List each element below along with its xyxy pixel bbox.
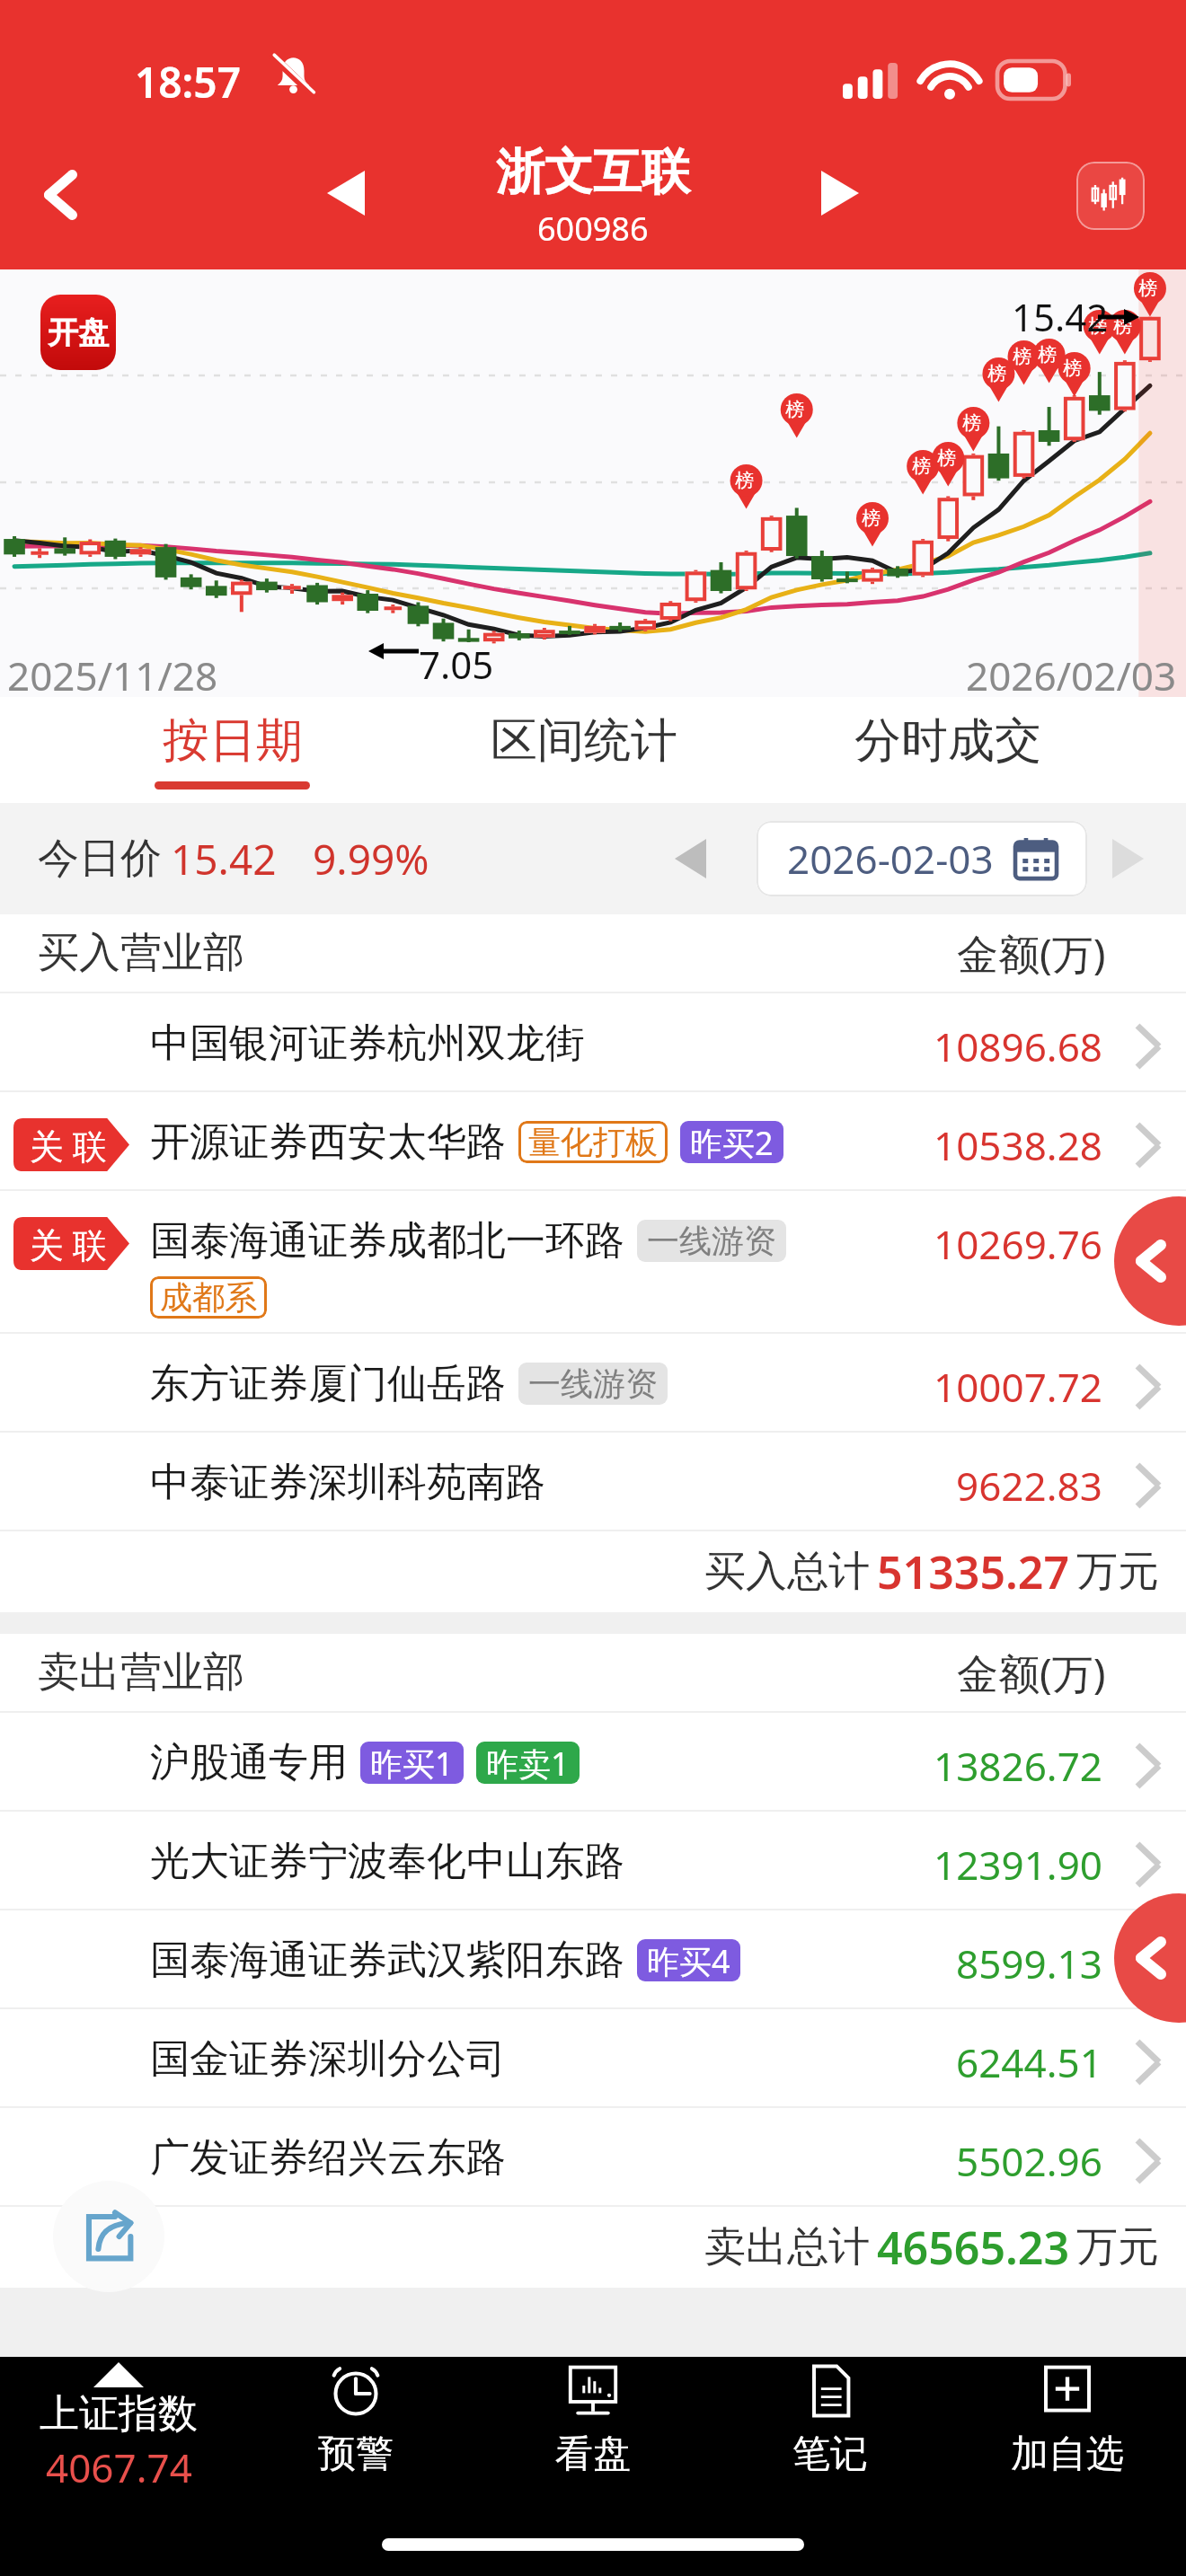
staticText: 加自选 xyxy=(1011,2430,1124,2478)
staticText: 榜 xyxy=(735,469,754,492)
staticText: 昨买1 xyxy=(370,1742,454,1784)
button[interactable]: 光大证券宁波奉化中山东路 xyxy=(0,1812,1186,1909)
staticText: 今日价 xyxy=(38,833,162,885)
button[interactable]: 中国银河证券杭州双龙街 xyxy=(0,993,1186,1090)
staticText: 9622.83 xyxy=(956,1459,1102,1513)
button[interactable]: 预警 xyxy=(237,2357,474,2501)
button[interactable]: 分时成交 xyxy=(786,697,1110,803)
staticText: 量化打板 xyxy=(528,1122,658,1162)
staticText: 笔记 xyxy=(792,2430,868,2478)
staticText: 东方证券厦门仙岳路 xyxy=(150,1359,506,1408)
staticText: 昨买2 xyxy=(690,1121,774,1163)
button[interactable]: 开盘 xyxy=(40,295,116,370)
button[interactable]: 区间统计 xyxy=(422,697,746,803)
button[interactable]: 国泰海通证券武汉紫阳东路 xyxy=(0,1910,1186,2007)
staticText: 10007.72 xyxy=(934,1360,1102,1414)
staticText: 国金证券深圳分公司 xyxy=(150,2034,506,2084)
button[interactable]: Next day xyxy=(1096,827,1159,890)
staticText: 国泰海通证券武汉紫阳东路 xyxy=(150,1936,624,1985)
button[interactable]: K-line chart xyxy=(1076,162,1145,230)
staticText: 关 联 xyxy=(30,1122,107,1169)
staticText: 榜 xyxy=(1038,343,1057,366)
staticText: 预警 xyxy=(318,2430,394,2478)
staticText: 广发证券绍兴云东路 xyxy=(150,2133,506,2183)
staticText: 51335.27 xyxy=(877,1541,1069,1602)
staticText: 开盘 xyxy=(48,313,109,352)
staticText: 6244.51 xyxy=(956,2035,1102,2089)
staticText: 9.99% xyxy=(313,831,429,887)
staticText: 2026-02-03 xyxy=(787,832,994,886)
button[interactable]: Share xyxy=(53,2181,164,2292)
button[interactable]: 看盘 xyxy=(474,2357,712,2501)
staticText: 一线游资 xyxy=(528,1363,658,1404)
staticText: 5502.96 xyxy=(956,2134,1102,2188)
staticText: 4067.74 xyxy=(46,2440,192,2494)
staticText: 上证指数 xyxy=(40,2389,198,2439)
staticText: 10896.68 xyxy=(934,1019,1102,1073)
staticText: 一线游资 xyxy=(647,1221,776,1261)
button[interactable]: 沪股通专用 xyxy=(0,1713,1186,1810)
button[interactable]: 关 联 xyxy=(0,1191,1186,1332)
staticText: 中国银河证券杭州双龙街 xyxy=(150,1019,585,1068)
staticText: 万元 xyxy=(1076,2221,1159,2273)
staticText: 万元 xyxy=(1076,1546,1159,1598)
staticText: 看盘 xyxy=(555,2430,631,2478)
staticText: 榜 xyxy=(937,446,956,470)
staticText: 榜 xyxy=(1013,345,1031,368)
button[interactable]: 国金证券深圳分公司 xyxy=(0,2009,1186,2106)
staticText: 2026/02/03 xyxy=(966,648,1177,697)
button[interactable]: 笔记 xyxy=(712,2357,949,2501)
staticText: 开源证券西安太华路 xyxy=(150,1117,506,1167)
button[interactable]: Previous stock xyxy=(296,144,395,243)
button[interactable]: 2026-02-03 xyxy=(757,821,1087,896)
staticText: 18:57 xyxy=(135,54,241,110)
staticText: 13826.72 xyxy=(934,1739,1102,1793)
staticText: 8599.13 xyxy=(956,1936,1102,1990)
staticText: 金额(万) xyxy=(957,925,1106,982)
staticText: 光大证券宁波奉化中山东路 xyxy=(150,1837,624,1886)
button[interactable]: 关 联 xyxy=(0,1092,1186,1189)
staticText: 榜 xyxy=(1088,314,1107,338)
staticText: 昨卖1 xyxy=(486,1742,570,1784)
staticText: 榜 xyxy=(987,362,1006,385)
staticText: 关 联 xyxy=(30,1221,107,1267)
button[interactable]: Back xyxy=(5,141,115,249)
staticText: 榜 xyxy=(912,454,931,478)
staticText: 分时成交 xyxy=(854,711,1041,771)
staticText: 10538.28 xyxy=(934,1118,1102,1172)
staticText: 2025/11/28 xyxy=(7,648,218,697)
button[interactable]: 中泰证券深圳科苑南路 xyxy=(0,1433,1186,1530)
staticText: 46565.23 xyxy=(877,2217,1069,2278)
staticText: 15.42 xyxy=(171,831,277,887)
staticText: 榜 xyxy=(785,398,804,421)
staticText: 成都系 xyxy=(160,1277,257,1318)
button[interactable]: 加自选 xyxy=(949,2357,1186,2501)
staticText: 卖出总计 xyxy=(704,2221,870,2273)
staticText: 区间统计 xyxy=(491,711,677,771)
staticText: 榜 xyxy=(1113,314,1132,338)
staticText: 浙文互联 xyxy=(496,142,690,203)
button[interactable]: 上证指数 xyxy=(0,2357,237,2501)
staticText: 15.42 xyxy=(1012,291,1109,342)
staticText: 榜 xyxy=(862,507,881,530)
staticText: 卖出营业部 xyxy=(38,1646,244,1698)
staticText: 榜 xyxy=(1063,357,1082,380)
staticText: 7.05 xyxy=(419,639,494,690)
staticText: 10269.76 xyxy=(934,1217,1102,1271)
button[interactable]: Previous day xyxy=(659,827,721,890)
button[interactable]: 广发证券绍兴云东路 xyxy=(0,2108,1186,2205)
button[interactable]: 按日期 xyxy=(70,697,394,803)
button[interactable]: Next stock xyxy=(791,144,889,243)
button[interactable]: Expand xyxy=(1114,1196,1186,1326)
staticText: 沪股通专用 xyxy=(150,1738,348,1787)
staticText: 中泰证券深圳科苑南路 xyxy=(150,1458,545,1507)
button[interactable]: 东方证券厦门仙岳路 xyxy=(0,1334,1186,1431)
staticText: 12391.90 xyxy=(934,1838,1102,1892)
staticText: 榜 xyxy=(962,411,981,435)
staticText: 买入总计 xyxy=(704,1546,870,1598)
staticText: 榜 xyxy=(1138,277,1157,300)
staticText: 按日期 xyxy=(163,711,303,771)
staticText: 国泰海通证券成都北一环路 xyxy=(150,1216,624,1266)
staticText: 金额(万) xyxy=(957,1645,1106,1701)
button[interactable]: Expand xyxy=(1114,1893,1186,2023)
